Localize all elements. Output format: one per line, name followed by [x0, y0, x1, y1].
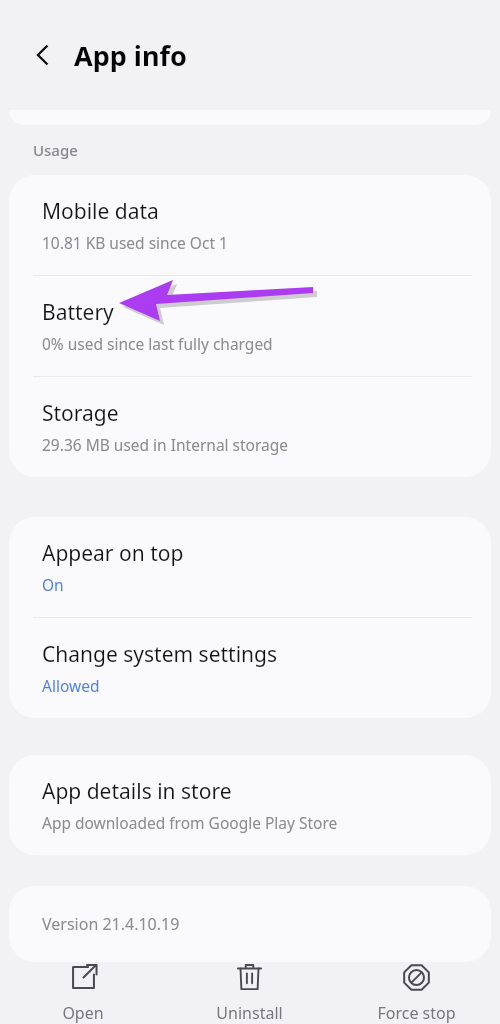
staticText: 29.36 MB used in Internal storage	[42, 434, 289, 455]
staticText: Version 21.4.10.19	[42, 913, 180, 935]
staticText: 10.81 KB used since Oct 1	[42, 232, 228, 253]
button[interactable]: Battery	[9, 276, 491, 376]
staticText: Storage	[42, 399, 119, 428]
staticText: App details in store	[42, 777, 232, 806]
staticText: Change system settings	[42, 640, 278, 669]
button[interactable]: Change system settings	[9, 618, 491, 718]
staticText: App downloaded from Google Play Store	[42, 812, 338, 833]
staticText: 0% used since last fully charged	[42, 333, 273, 354]
button[interactable]: App details in store	[9, 755, 491, 855]
staticText: On	[42, 574, 64, 595]
button[interactable]: Open	[0, 962, 166, 1024]
staticText: Uninstall	[216, 1002, 283, 1024]
staticText: Mobile data	[42, 197, 159, 226]
staticText: App info	[74, 37, 187, 74]
staticText: Battery	[42, 298, 114, 327]
staticText: Allowed	[42, 675, 100, 696]
staticText: Appear on top	[42, 539, 184, 568]
button[interactable]: Back	[20, 32, 66, 78]
staticText: Force stop	[377, 1002, 456, 1024]
staticText: Open	[62, 1002, 104, 1024]
button[interactable]: Mobile data	[9, 175, 491, 275]
button[interactable]: Storage	[9, 377, 491, 477]
button[interactable]: Uninstall	[166, 962, 333, 1024]
button[interactable]: Version 21.4.10.19	[9, 886, 491, 962]
button[interactable]: Force stop	[333, 962, 500, 1024]
button[interactable]: Appear on top	[9, 517, 491, 617]
staticText: Usage	[33, 140, 78, 160]
